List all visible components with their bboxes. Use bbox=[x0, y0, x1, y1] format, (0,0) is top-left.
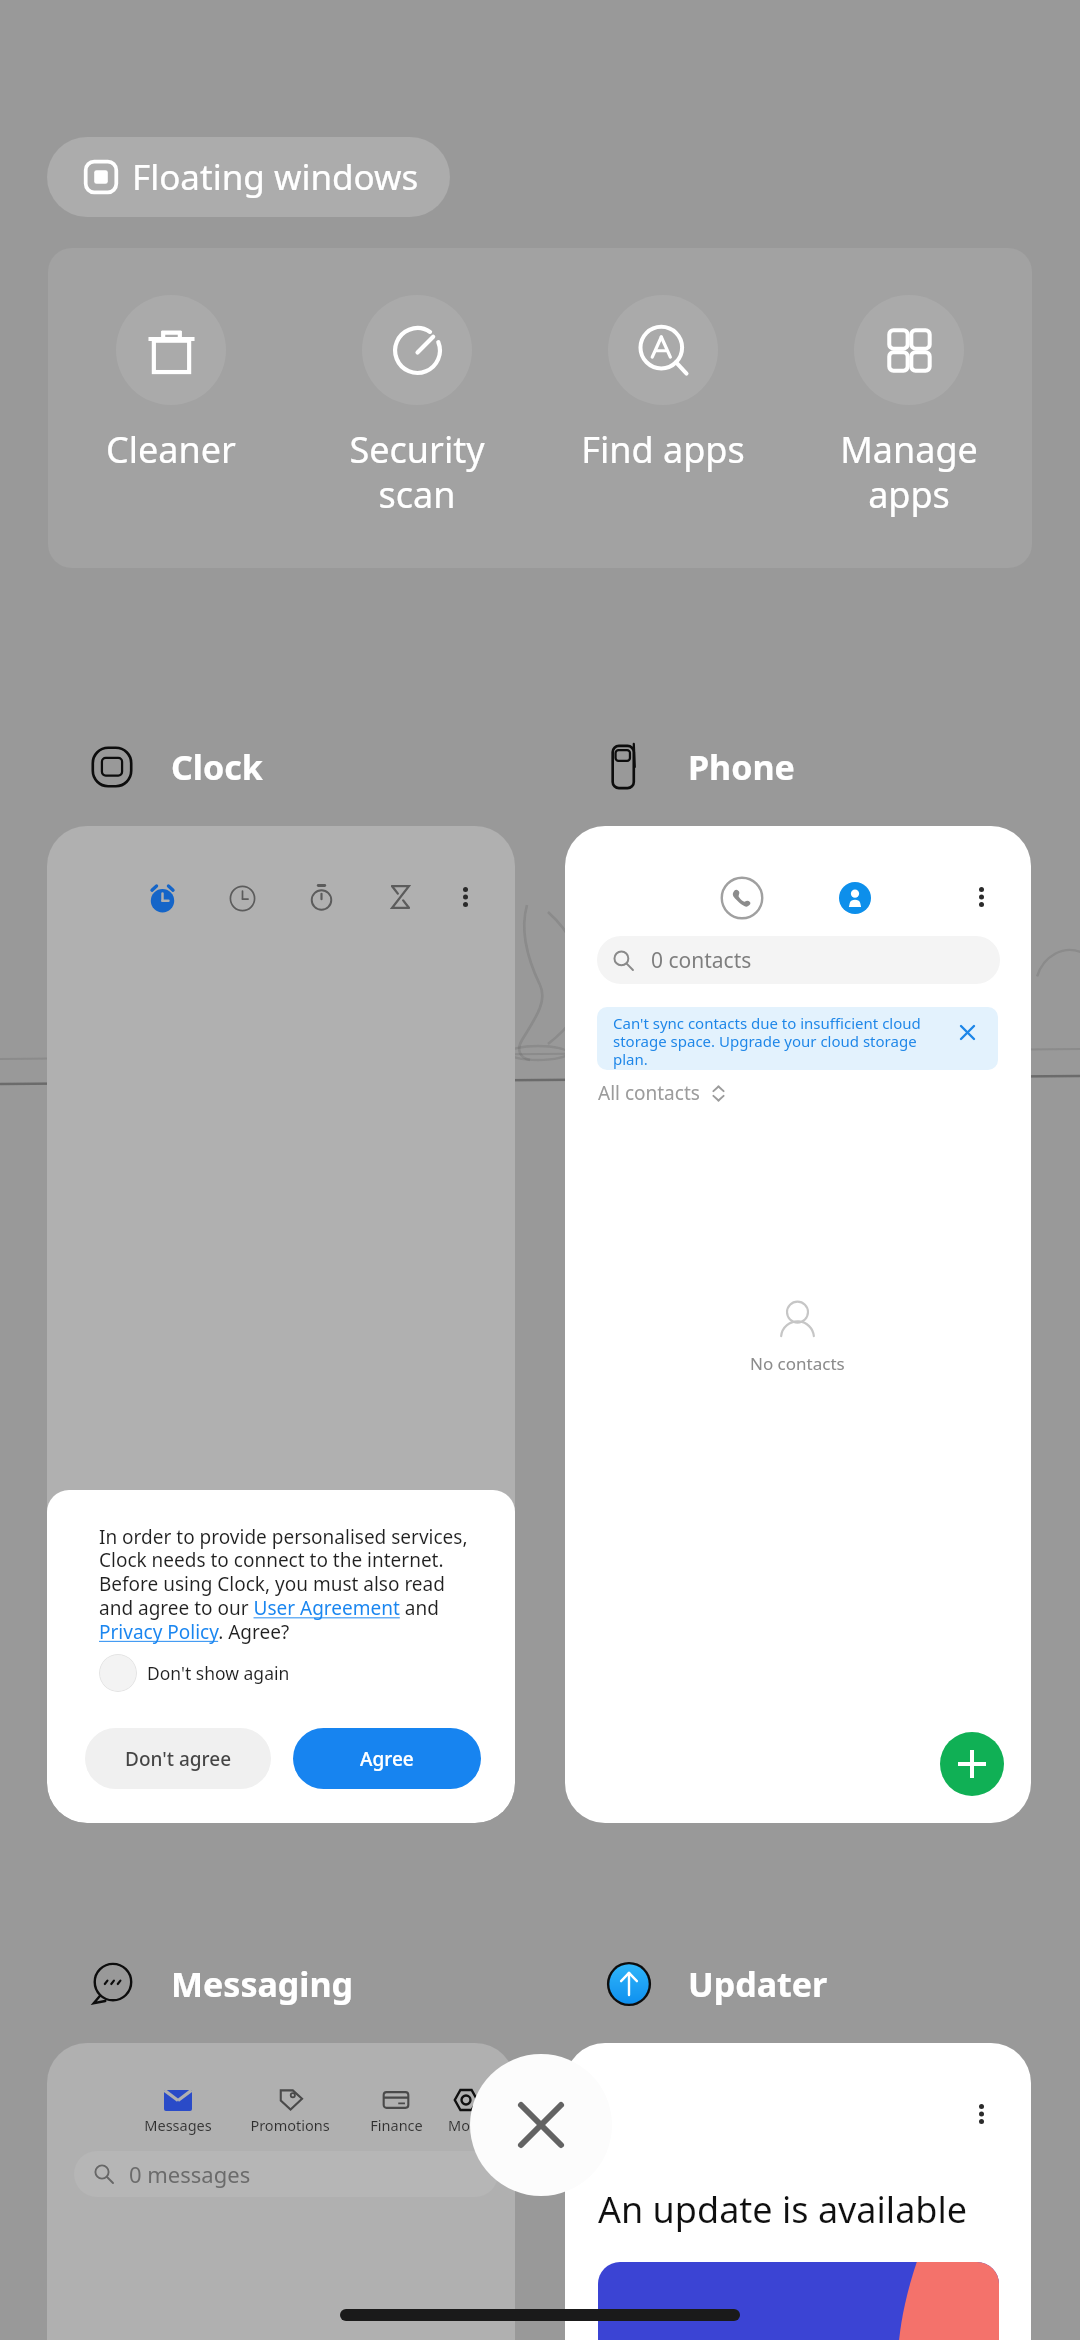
button[interactable]: Phone bbox=[605, 743, 795, 791]
staticText: Don't agree bbox=[125, 1746, 232, 1772]
button[interactable]: Messages bbox=[118, 2088, 238, 2135]
staticText: In order to provide personalised service… bbox=[99, 1524, 473, 1645]
staticText: No contacts bbox=[750, 1352, 845, 1375]
button[interactable]: More options bbox=[463, 887, 468, 907]
staticText: Clock bbox=[171, 744, 263, 790]
button[interactable]: Alarm bbox=[146, 882, 179, 915]
button[interactable]: Contacts bbox=[839, 882, 871, 914]
button[interactable]: More options bbox=[565, 2043, 1031, 2340]
button[interactable]: 0 contacts bbox=[597, 936, 1000, 984]
button[interactable]: Agree bbox=[293, 1728, 481, 1789]
staticText: Floating windows bbox=[132, 153, 419, 201]
staticText: Manage apps bbox=[840, 425, 978, 519]
staticText: Cleaner bbox=[106, 425, 236, 474]
button[interactable]: Timer bbox=[391, 885, 410, 909]
button[interactable]: Don't agree bbox=[85, 1728, 271, 1789]
button[interactable]: Manage apps bbox=[786, 295, 1032, 519]
button[interactable]: Updater bbox=[605, 1960, 828, 2008]
staticText: Agree bbox=[360, 1746, 414, 1772]
staticText: Promotions bbox=[250, 2115, 330, 2135]
staticText: More bbox=[448, 2115, 484, 2135]
button[interactable]: All contacts bbox=[598, 1080, 727, 1106]
staticText: Security scan bbox=[349, 425, 485, 519]
button[interactable]: Security scan bbox=[294, 295, 540, 519]
staticText: Find apps bbox=[581, 425, 745, 474]
button[interactable]: Clock bbox=[88, 743, 263, 791]
staticText: Finance bbox=[370, 2115, 423, 2135]
staticText: All contacts bbox=[598, 1080, 700, 1106]
button[interactable]: Messages bbox=[47, 2043, 515, 2340]
staticText: 0 contacts bbox=[651, 946, 752, 975]
button[interactable]: Close all bbox=[470, 2054, 612, 2196]
staticText: Updater bbox=[688, 1961, 828, 2007]
button[interactable]: World clock bbox=[227, 883, 258, 914]
staticText: Phone bbox=[688, 744, 795, 790]
staticText: Don't show again bbox=[147, 1661, 290, 1685]
button[interactable]: Finance bbox=[336, 2088, 456, 2135]
button[interactable]: More options bbox=[979, 2104, 984, 2124]
staticText: 0 messages bbox=[129, 2159, 251, 2189]
button[interactable]: Stopwatch bbox=[310, 883, 333, 910]
button[interactable]: Don't show again bbox=[99, 1654, 290, 1692]
button[interactable]: More options bbox=[979, 887, 984, 907]
button[interactable]: Keypad bbox=[565, 826, 1031, 1823]
button[interactable]: Add contact bbox=[940, 1732, 1004, 1796]
button[interactable]: Messaging bbox=[88, 1960, 354, 2008]
button[interactable]: Cleaner bbox=[48, 295, 294, 474]
button[interactable]: Keypad bbox=[720, 876, 764, 920]
button[interactable]: More bbox=[406, 2088, 515, 2135]
staticText: Can't sync contacts due to insufficient … bbox=[613, 1013, 931, 1070]
staticText: Messaging bbox=[171, 1961, 354, 2007]
button[interactable]: Find apps bbox=[540, 295, 786, 474]
staticText: An update is available bbox=[598, 2185, 968, 2234]
button[interactable]: Dismiss bbox=[961, 1026, 974, 1039]
button[interactable]: Floating windows bbox=[47, 137, 450, 217]
button[interactable]: Alarm bbox=[47, 826, 515, 1823]
staticText: Messages bbox=[144, 2115, 212, 2135]
button[interactable]: 0 messages bbox=[74, 2151, 498, 2197]
button[interactable]: Promotions bbox=[230, 2088, 350, 2135]
